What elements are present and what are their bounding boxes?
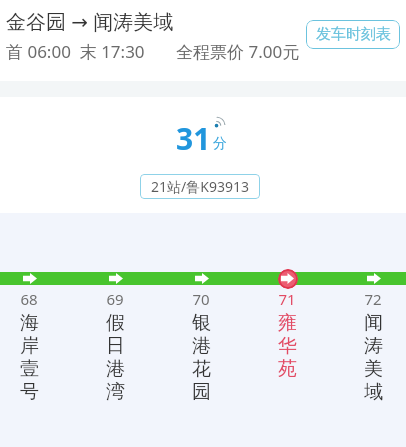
staticText: 分 (213, 135, 227, 153)
staticText: 美 (364, 357, 383, 380)
staticText: 号 (20, 380, 39, 403)
staticText: 港 (106, 357, 125, 380)
staticText: 涛 (364, 334, 383, 357)
staticText: 壹 (20, 357, 39, 380)
staticText: 全程票价 7.00元 (176, 40, 300, 63)
staticText: 金谷园 → 闻涛美域 (6, 8, 174, 35)
other: Live tracking (214, 115, 228, 128)
staticText: 园 (192, 380, 211, 403)
staticText: 71 (278, 289, 296, 309)
staticText: 日 (106, 334, 125, 357)
button[interactable]: 70 (158, 213, 244, 447)
staticText: 69 (106, 289, 124, 309)
staticText: 海 (20, 311, 39, 334)
button[interactable]: 72 (330, 213, 406, 447)
staticText: 70 (192, 289, 210, 309)
staticText: 苑 (278, 357, 297, 380)
staticText: 68 (20, 289, 38, 309)
staticText: 雍 (278, 311, 297, 334)
staticText: 岸 (20, 334, 39, 357)
button[interactable]: 69 (72, 213, 158, 447)
staticText: 31 (176, 118, 211, 159)
button[interactable]: 发车时刻表 (306, 20, 400, 49)
staticText: 72 (364, 289, 382, 309)
staticText: 首 06:00 末 17:30 (6, 40, 145, 63)
button[interactable]: 21站/鲁K93913 (140, 174, 260, 199)
staticText: 湾 (106, 380, 125, 403)
staticText: 华 (278, 334, 297, 357)
button[interactable]: 68 (0, 213, 72, 447)
staticText: 银 (192, 311, 211, 334)
staticText: 域 (364, 380, 383, 403)
staticText: 发车时刻表 (316, 25, 391, 44)
staticText: 闻 (364, 311, 383, 334)
staticText: 假 (106, 311, 125, 334)
staticText: 港 (192, 334, 211, 357)
staticText: 21站/鲁K93913 (151, 177, 249, 196)
button[interactable]: 71 (244, 213, 330, 447)
staticText: 花 (192, 357, 211, 380)
